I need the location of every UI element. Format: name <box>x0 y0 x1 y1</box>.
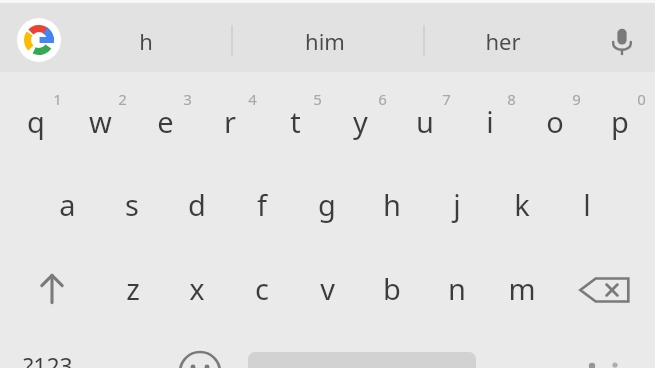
button[interactable]: Google Search <box>17 18 61 62</box>
staticText: m <box>508 269 536 308</box>
button[interactable] <box>36 169 101 241</box>
button[interactable] <box>84 14 208 58</box>
button[interactable] <box>393 86 458 158</box>
button[interactable] <box>361 169 426 241</box>
button[interactable] <box>426 253 491 325</box>
staticText: 5 <box>313 89 322 109</box>
staticText: r <box>224 102 236 141</box>
button[interactable]: Period <box>570 352 640 368</box>
staticText: o <box>546 102 564 141</box>
button[interactable] <box>4 86 69 158</box>
button[interactable]: Shift <box>18 255 86 323</box>
staticText: h <box>139 26 153 56</box>
button[interactable]: Emoji <box>172 338 228 368</box>
button[interactable] <box>523 86 588 158</box>
button[interactable] <box>10 338 90 368</box>
staticText: g <box>318 185 336 224</box>
staticText: x <box>189 269 205 308</box>
staticText: p <box>611 102 629 141</box>
button[interactable] <box>166 253 231 325</box>
staticText: a <box>59 185 76 224</box>
button[interactable] <box>263 14 387 58</box>
staticText: b <box>383 269 401 308</box>
staticText: q <box>27 102 45 141</box>
staticText: c <box>255 269 269 308</box>
button[interactable] <box>231 253 296 325</box>
button[interactable] <box>329 86 394 158</box>
button[interactable] <box>425 169 490 241</box>
staticText: 0 <box>637 89 646 109</box>
button[interactable] <box>69 86 134 158</box>
staticText: 6 <box>378 89 387 109</box>
staticText: t <box>290 102 301 141</box>
staticText: y <box>353 102 368 141</box>
button[interactable]: Backspace <box>572 258 636 322</box>
staticText: 8 <box>507 89 516 109</box>
button[interactable] <box>101 253 166 325</box>
staticText: ?123 <box>23 350 73 368</box>
button[interactable] <box>296 169 361 241</box>
staticText: 3 <box>183 89 192 109</box>
button[interactable]: Voice input <box>600 19 644 63</box>
button[interactable] <box>101 169 166 241</box>
button[interactable] <box>490 253 555 325</box>
staticText: 9 <box>572 89 581 109</box>
staticText: 1 <box>53 89 62 109</box>
staticText: her <box>485 26 521 56</box>
staticText: n <box>448 269 466 308</box>
button[interactable] <box>264 86 329 158</box>
button[interactable] <box>296 253 361 325</box>
staticText: u <box>416 102 434 141</box>
staticText: w <box>89 102 112 141</box>
button[interactable] <box>199 86 264 158</box>
staticText: j <box>453 185 461 224</box>
button[interactable] <box>231 169 296 241</box>
staticText: z <box>126 269 140 308</box>
staticText: f <box>257 185 267 224</box>
staticText: 7 <box>442 89 451 109</box>
staticText: i <box>486 102 494 141</box>
button[interactable] <box>134 86 199 158</box>
staticText: 4 <box>248 89 257 109</box>
button[interactable] <box>441 14 565 58</box>
staticText: h <box>383 185 401 224</box>
staticText: e <box>157 102 174 141</box>
staticText: 2 <box>118 89 127 109</box>
button[interactable] <box>555 169 620 241</box>
staticText: him <box>305 26 345 56</box>
staticText: s <box>125 185 139 224</box>
button[interactable] <box>588 86 653 158</box>
staticText: d <box>188 185 206 224</box>
staticText: l <box>583 185 591 224</box>
button[interactable] <box>490 169 555 241</box>
button[interactable] <box>361 253 426 325</box>
button[interactable] <box>166 169 231 241</box>
button[interactable] <box>458 86 523 158</box>
staticText: k <box>514 185 530 224</box>
staticText: v <box>320 269 335 308</box>
